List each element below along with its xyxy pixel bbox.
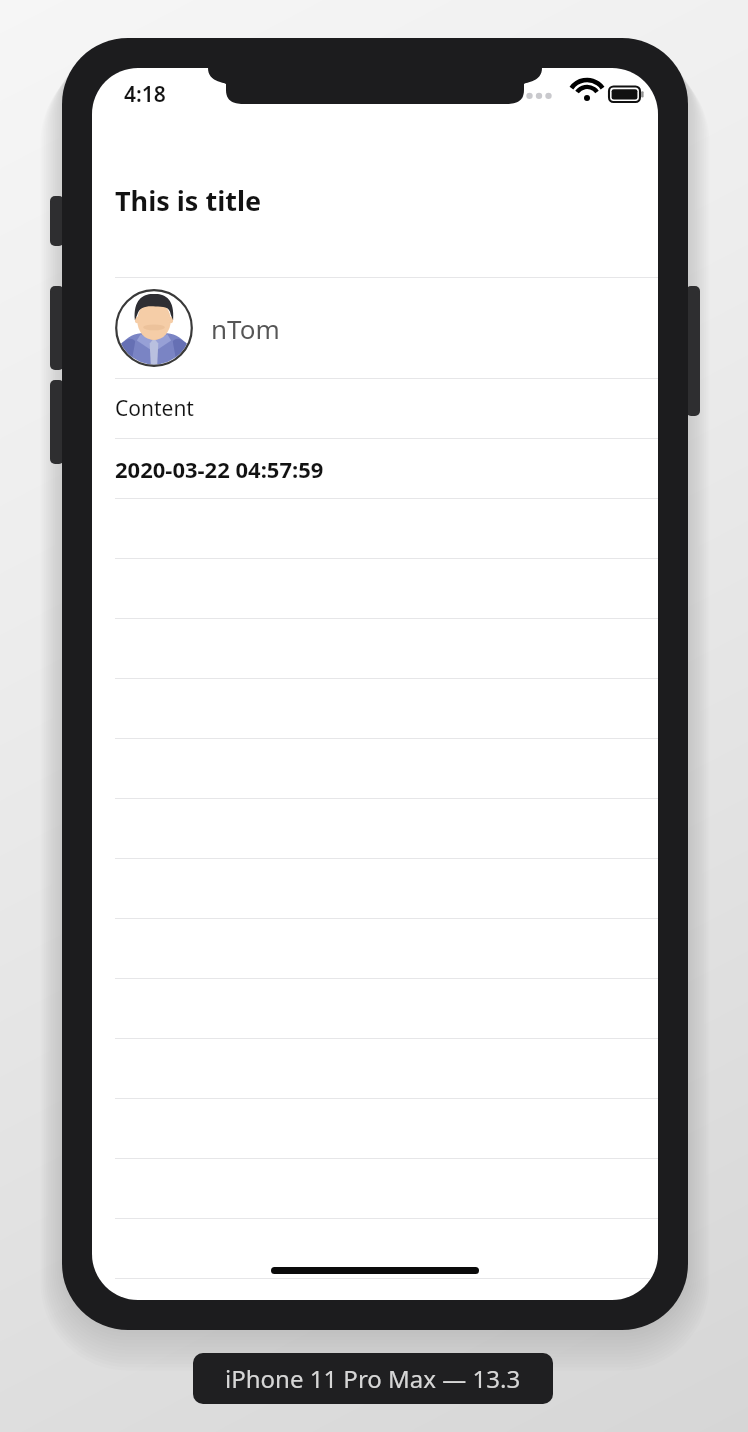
button[interactable]: Content (92, 379, 658, 438)
staticText: This is title (115, 182, 262, 219)
staticText: nTom (211, 311, 280, 346)
button[interactable]: 2020-03-22 04:57:59 (92, 439, 658, 498)
staticText: 2020-03-22 04:57:59 (115, 454, 324, 484)
staticText: 4:18 (124, 80, 166, 109)
staticText: iPhone 11 Pro Max — 13.3 (225, 1362, 521, 1395)
button[interactable] (92, 1219, 658, 1278)
button[interactable]: iPhone 11 Pro Max — 13.3 (193, 1353, 553, 1404)
button[interactable]: User avatar (92, 278, 658, 378)
other: User avatar (115, 289, 193, 367)
staticText: Content (115, 394, 194, 423)
